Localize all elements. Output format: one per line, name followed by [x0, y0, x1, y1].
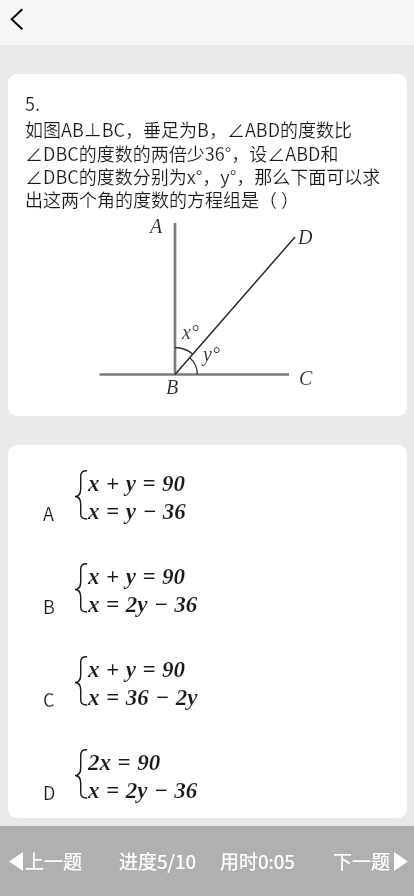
staticText: B: [166, 376, 179, 398]
button[interactable]: Back: [0, 0, 40, 45]
staticText: x°: [182, 321, 199, 343]
staticText: 上一题: [25, 847, 83, 875]
staticText: 5.: [25, 90, 40, 116]
staticText: D: [43, 779, 56, 805]
staticText: 下一题: [333, 847, 391, 875]
staticText: x = 36 − 2y: [88, 685, 198, 710]
button[interactable]: B: [8, 559, 407, 621]
staticText: x + y = 90: [88, 471, 186, 496]
staticText: 2x = 90: [88, 750, 161, 775]
staticText: 用时0:05: [220, 847, 295, 875]
staticText: x + y = 90: [88, 657, 186, 682]
staticText: C: [43, 686, 55, 712]
staticText: y°: [203, 343, 220, 365]
staticText: A: [150, 215, 163, 237]
button[interactable]: 下一题: [306, 826, 414, 896]
staticText: A: [43, 500, 54, 526]
staticText: B: [43, 593, 55, 619]
staticText: D: [298, 226, 313, 248]
staticText: C: [299, 367, 313, 389]
button[interactable]: A: [8, 466, 407, 528]
button[interactable]: D: [8, 745, 407, 807]
button[interactable]: 上一题: [0, 826, 108, 896]
staticText: 如图AB⊥BC，垂足为B，∠ABD的度数比∠DBC的度数的两倍少36°，设∠AB…: [25, 116, 385, 212]
staticText: x = y − 36: [88, 499, 186, 524]
staticText: 进度5/10: [119, 847, 197, 875]
staticText: x + y = 90: [88, 564, 186, 589]
button[interactable]: C: [8, 652, 407, 714]
staticText: x = 2y − 36: [88, 592, 198, 617]
staticText: x = 2y − 36: [88, 778, 198, 803]
